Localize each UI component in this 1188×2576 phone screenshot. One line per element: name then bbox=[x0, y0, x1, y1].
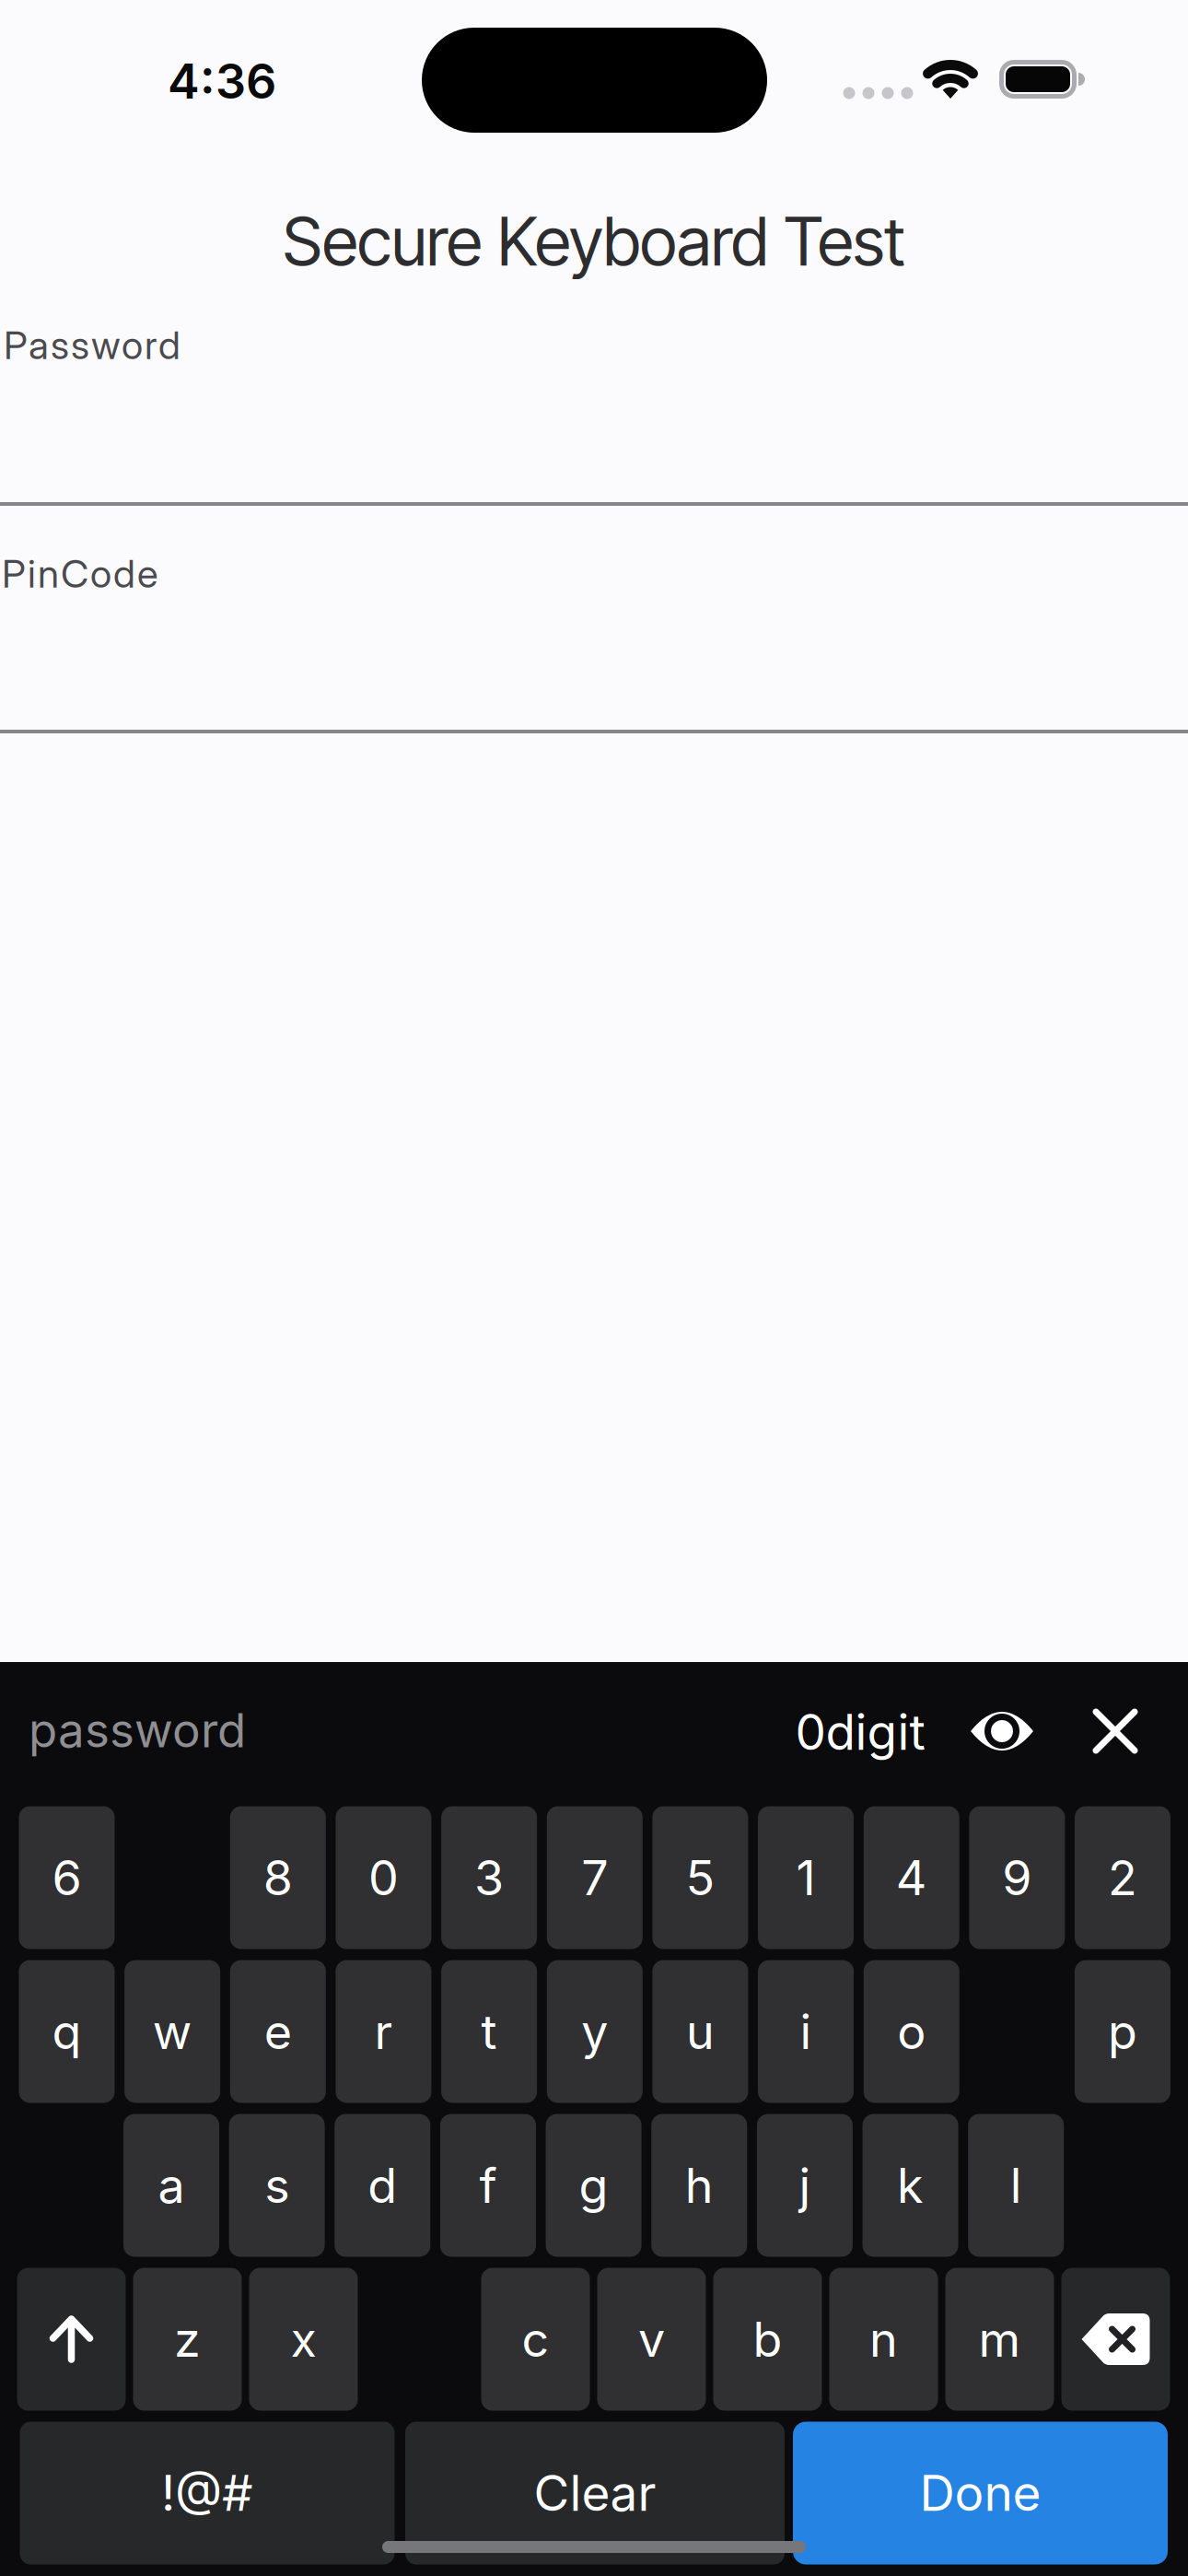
staticText: m bbox=[978, 2310, 1021, 2368]
staticText: f bbox=[479, 2156, 497, 2214]
staticText: c bbox=[522, 2310, 549, 2368]
staticText: s bbox=[264, 2156, 289, 2214]
staticText: 1 bbox=[796, 1849, 816, 1907]
staticText: r bbox=[374, 2002, 393, 2060]
button[interactable]: c bbox=[481, 2268, 590, 2411]
staticText: n bbox=[869, 2310, 898, 2368]
staticText: b bbox=[753, 2310, 782, 2368]
button[interactable]: o bbox=[864, 1960, 959, 2103]
button[interactable]: t bbox=[441, 1960, 537, 2103]
staticText: t bbox=[481, 2002, 497, 2060]
button[interactable]: 5 bbox=[652, 1806, 748, 1949]
button[interactable]: 7 bbox=[547, 1806, 643, 1949]
button[interactable]: n bbox=[829, 2268, 938, 2411]
button[interactable]: PinCode bbox=[0, 533, 1188, 730]
button[interactable]: w bbox=[125, 1960, 220, 2103]
staticText: k bbox=[897, 2156, 924, 2214]
button[interactable]: g bbox=[546, 2114, 642, 2257]
staticText: x bbox=[291, 2310, 316, 2368]
staticText: j bbox=[799, 2156, 811, 2214]
button[interactable]: d bbox=[335, 2114, 430, 2257]
button[interactable]: 3 bbox=[441, 1806, 537, 1949]
button[interactable]: q bbox=[19, 1960, 115, 2103]
button[interactable]: i bbox=[758, 1960, 854, 2103]
button[interactable]: 4 bbox=[864, 1806, 959, 1949]
button[interactable]: f bbox=[440, 2114, 536, 2257]
staticText: 3 bbox=[474, 1849, 504, 1907]
button[interactable]: Close keyboard bbox=[1068, 1684, 1162, 1778]
button[interactable]: 1 bbox=[758, 1806, 854, 1949]
staticText: z bbox=[174, 2310, 201, 2368]
button[interactable]: 9 bbox=[969, 1806, 1065, 1949]
button[interactable]: m bbox=[945, 2268, 1054, 2411]
staticText: 9 bbox=[1002, 1849, 1032, 1907]
staticText: o bbox=[897, 2002, 926, 2060]
button[interactable]: l bbox=[968, 2114, 1064, 2257]
staticText: w bbox=[153, 2002, 192, 2060]
button[interactable]: j bbox=[757, 2114, 853, 2257]
button[interactable]: b bbox=[713, 2268, 822, 2411]
staticText: 7 bbox=[581, 1849, 608, 1907]
button[interactable]: !@# bbox=[20, 2422, 395, 2564]
button[interactable]: e bbox=[230, 1960, 326, 2103]
button[interactable]: s bbox=[229, 2114, 325, 2257]
staticText: PinCode bbox=[2, 550, 158, 597]
staticText: q bbox=[52, 2002, 82, 2060]
button[interactable]: Done bbox=[793, 2422, 1168, 2564]
staticText: v bbox=[638, 2310, 665, 2368]
button[interactable]: v bbox=[597, 2268, 706, 2411]
staticText: g bbox=[579, 2156, 608, 2214]
button[interactable]: k bbox=[863, 2114, 958, 2257]
staticText: e bbox=[264, 2002, 292, 2060]
button[interactable]: r bbox=[336, 1960, 431, 2103]
staticText: y bbox=[581, 2002, 608, 2060]
staticText: h bbox=[685, 2156, 714, 2214]
staticText: 0 bbox=[368, 1849, 399, 1907]
staticText: 2 bbox=[1108, 1849, 1137, 1907]
staticText: i bbox=[800, 2002, 812, 2060]
button[interactable]: p bbox=[1075, 1960, 1171, 2103]
staticText: Password bbox=[4, 322, 181, 368]
button[interactable]: x bbox=[249, 2268, 358, 2411]
staticText: 8 bbox=[263, 1849, 293, 1907]
staticText: 4:36 bbox=[168, 52, 276, 110]
button[interactable]: Delete bbox=[1061, 2268, 1170, 2411]
staticText: 5 bbox=[686, 1849, 715, 1907]
staticText: password bbox=[29, 1702, 246, 1759]
staticText: 0digit bbox=[795, 1703, 925, 1762]
staticText: p bbox=[1108, 2002, 1137, 2060]
button[interactable]: h bbox=[651, 2114, 747, 2257]
button[interactable]: Shift bbox=[17, 2268, 126, 2411]
button[interactable]: 8 bbox=[230, 1806, 326, 1949]
staticText: 6 bbox=[52, 1849, 82, 1907]
staticText: l bbox=[1010, 2156, 1022, 2214]
button[interactable]: 0 bbox=[336, 1806, 431, 1949]
button[interactable]: 6 bbox=[19, 1806, 115, 1949]
staticText: a bbox=[158, 2156, 185, 2214]
button[interactable]: Clear bbox=[405, 2422, 785, 2564]
button[interactable]: Password bbox=[0, 304, 1188, 502]
staticText: !@# bbox=[161, 2464, 253, 2523]
button[interactable]: z bbox=[133, 2268, 242, 2411]
button[interactable]: u bbox=[652, 1960, 748, 2103]
button[interactable]: y bbox=[547, 1960, 643, 2103]
staticText: Done bbox=[920, 2464, 1041, 2523]
button[interactable]: Show password bbox=[951, 1680, 1053, 1782]
staticText: 4 bbox=[896, 1849, 927, 1907]
button[interactable]: a bbox=[123, 2114, 219, 2257]
staticText: Clear bbox=[534, 2464, 656, 2523]
staticText: Secure Keyboard Test bbox=[283, 201, 905, 281]
staticText: d bbox=[368, 2156, 397, 2214]
staticText: u bbox=[686, 2002, 715, 2060]
button[interactable]: 2 bbox=[1075, 1806, 1171, 1949]
